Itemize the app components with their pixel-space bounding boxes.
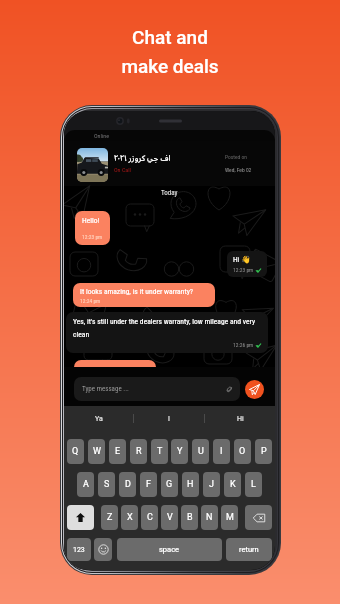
button[interactable]: Yes, it's still under the dealers warran…	[66, 312, 268, 353]
staticText: 12:23 pm	[233, 267, 254, 273]
button[interactable]: H	[182, 472, 199, 497]
other: Attach file	[225, 385, 233, 393]
staticText: I	[168, 415, 170, 423]
staticText: J	[209, 479, 214, 490]
button[interactable]: R	[130, 439, 147, 464]
button[interactable]: J	[203, 472, 220, 497]
staticText: Q	[72, 446, 79, 457]
staticText: Today	[161, 189, 178, 197]
staticText: 12:23 pm	[82, 234, 103, 240]
button[interactable]: E	[109, 439, 126, 464]
staticText: make deals	[121, 55, 219, 77]
staticText: C	[147, 512, 153, 523]
staticText: It looks amazing, is it under warranty?	[80, 287, 194, 296]
staticText: T	[157, 446, 163, 457]
button[interactable]: Hi	[205, 406, 275, 431]
staticText: Chat and	[132, 26, 208, 48]
staticText: Posted on	[225, 154, 247, 160]
button[interactable]: Y	[171, 439, 188, 464]
staticText: B	[187, 512, 193, 523]
staticText: N	[206, 512, 213, 523]
staticText: On Call	[114, 166, 131, 173]
button[interactable]: Q	[67, 439, 84, 464]
staticText: Type message ...	[82, 385, 129, 393]
staticText: return	[239, 545, 259, 554]
button[interactable]: It looks amazing, is it under warranty?	[73, 283, 215, 307]
staticText: L	[251, 479, 256, 490]
staticText: E	[115, 446, 121, 457]
button[interactable]: S	[98, 472, 115, 497]
button[interactable]: L	[245, 472, 262, 497]
staticText: W	[93, 446, 101, 457]
staticText: 123	[73, 546, 85, 554]
button[interactable]: K	[224, 472, 241, 497]
staticText: Hi	[237, 415, 244, 423]
button[interactable]: A	[77, 472, 94, 497]
staticText: U	[198, 446, 204, 457]
button[interactable]: Z	[101, 505, 118, 530]
button[interactable]: C	[141, 505, 158, 530]
button[interactable]: V	[161, 505, 178, 530]
button[interactable]: Listing photo	[77, 148, 108, 182]
button[interactable]: Hi 👋	[227, 251, 267, 277]
staticText: اف جي كروزر ٢٠٢١	[114, 152, 171, 163]
staticText: 12:26 pm	[233, 342, 254, 348]
staticText: Online	[94, 132, 109, 139]
button[interactable]: B	[181, 505, 198, 530]
button[interactable]: I	[213, 439, 230, 464]
staticText: K	[230, 479, 236, 490]
button[interactable]: Ya	[64, 406, 133, 431]
staticText: space	[159, 545, 180, 554]
staticText: X	[127, 512, 133, 523]
staticText: S	[104, 479, 110, 490]
button[interactable]: return	[226, 538, 272, 561]
button[interactable]: Backspace	[245, 505, 272, 530]
button[interactable]: P	[255, 439, 272, 464]
staticText: F	[146, 479, 151, 490]
staticText: H	[187, 479, 194, 490]
button[interactable]: T	[151, 439, 168, 464]
button[interactable]: D	[119, 472, 136, 497]
staticText: I	[220, 446, 223, 457]
staticText: Ya	[95, 415, 103, 423]
staticText: O	[239, 446, 246, 457]
staticText: Hello!	[82, 216, 100, 225]
staticText: Wed, Feb 02	[225, 167, 252, 173]
button[interactable]: Emoji	[94, 538, 112, 561]
button[interactable]: U	[192, 439, 209, 464]
staticText: Yes, it's still under the dealers warran…	[73, 317, 261, 339]
button[interactable]: G	[161, 472, 178, 497]
button[interactable]: Send	[245, 380, 264, 399]
staticText: Hi 👋	[233, 255, 251, 264]
button[interactable]: Type message ...	[74, 377, 240, 401]
button[interactable]: 123	[67, 538, 91, 561]
button[interactable]: F	[140, 472, 157, 497]
button[interactable]: N	[201, 505, 218, 530]
staticText: 12:24 pm	[80, 298, 101, 304]
staticText: Z	[107, 512, 113, 523]
staticText: R	[136, 446, 142, 457]
staticText: Y	[177, 446, 183, 457]
button[interactable]: X	[121, 505, 138, 530]
button[interactable]: space	[117, 538, 222, 561]
button[interactable]: M	[221, 505, 238, 530]
staticText: A	[83, 479, 89, 490]
button[interactable]: W	[88, 439, 105, 464]
button[interactable]: I	[134, 406, 204, 431]
button[interactable]: Hello!	[75, 211, 110, 245]
staticText: M	[226, 512, 234, 523]
staticText: P	[261, 446, 267, 457]
staticText: G	[166, 479, 173, 490]
staticText: V	[167, 512, 173, 523]
staticText: D	[125, 479, 131, 490]
button[interactable]: Shift	[67, 505, 94, 530]
button[interactable]: O	[234, 439, 251, 464]
